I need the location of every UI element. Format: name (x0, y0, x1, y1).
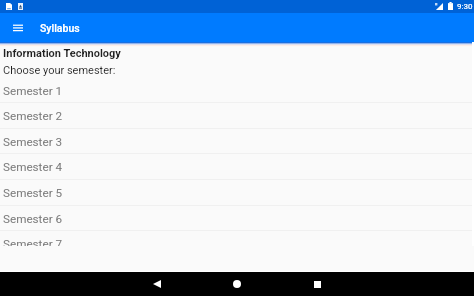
staticText: Semester 7 (3, 237, 63, 246)
staticText: Choose your semester: (3, 64, 116, 77)
button[interactable]: Open navigation menu (3, 13, 32, 42)
staticText: Information Technology (3, 47, 121, 60)
button[interactable]: Semester 1 (0, 78, 474, 104)
button[interactable]: Semester 3 (0, 129, 474, 155)
button[interactable]: Semester 2 (0, 103, 474, 129)
button[interactable]: Semester 6 (0, 206, 474, 232)
staticText: 9:30 (457, 2, 473, 11)
staticText: Semester 4 (3, 160, 63, 174)
staticText: Semester 3 (3, 135, 63, 149)
button[interactable]: Semester 4 (0, 154, 474, 180)
staticText: Semester 5 (3, 186, 63, 200)
button[interactable]: Home (225, 272, 249, 296)
button[interactable]: Recent apps (305, 272, 329, 296)
staticText: Semester 6 (3, 212, 63, 226)
button[interactable]: Back (145, 272, 169, 296)
staticText: Syllabus (40, 22, 80, 34)
button[interactable]: Semester 7 (0, 231, 474, 246)
button[interactable]: Semester 5 (0, 180, 474, 206)
staticText: Semester 1 (3, 84, 63, 98)
staticText: Semester 2 (3, 109, 63, 123)
